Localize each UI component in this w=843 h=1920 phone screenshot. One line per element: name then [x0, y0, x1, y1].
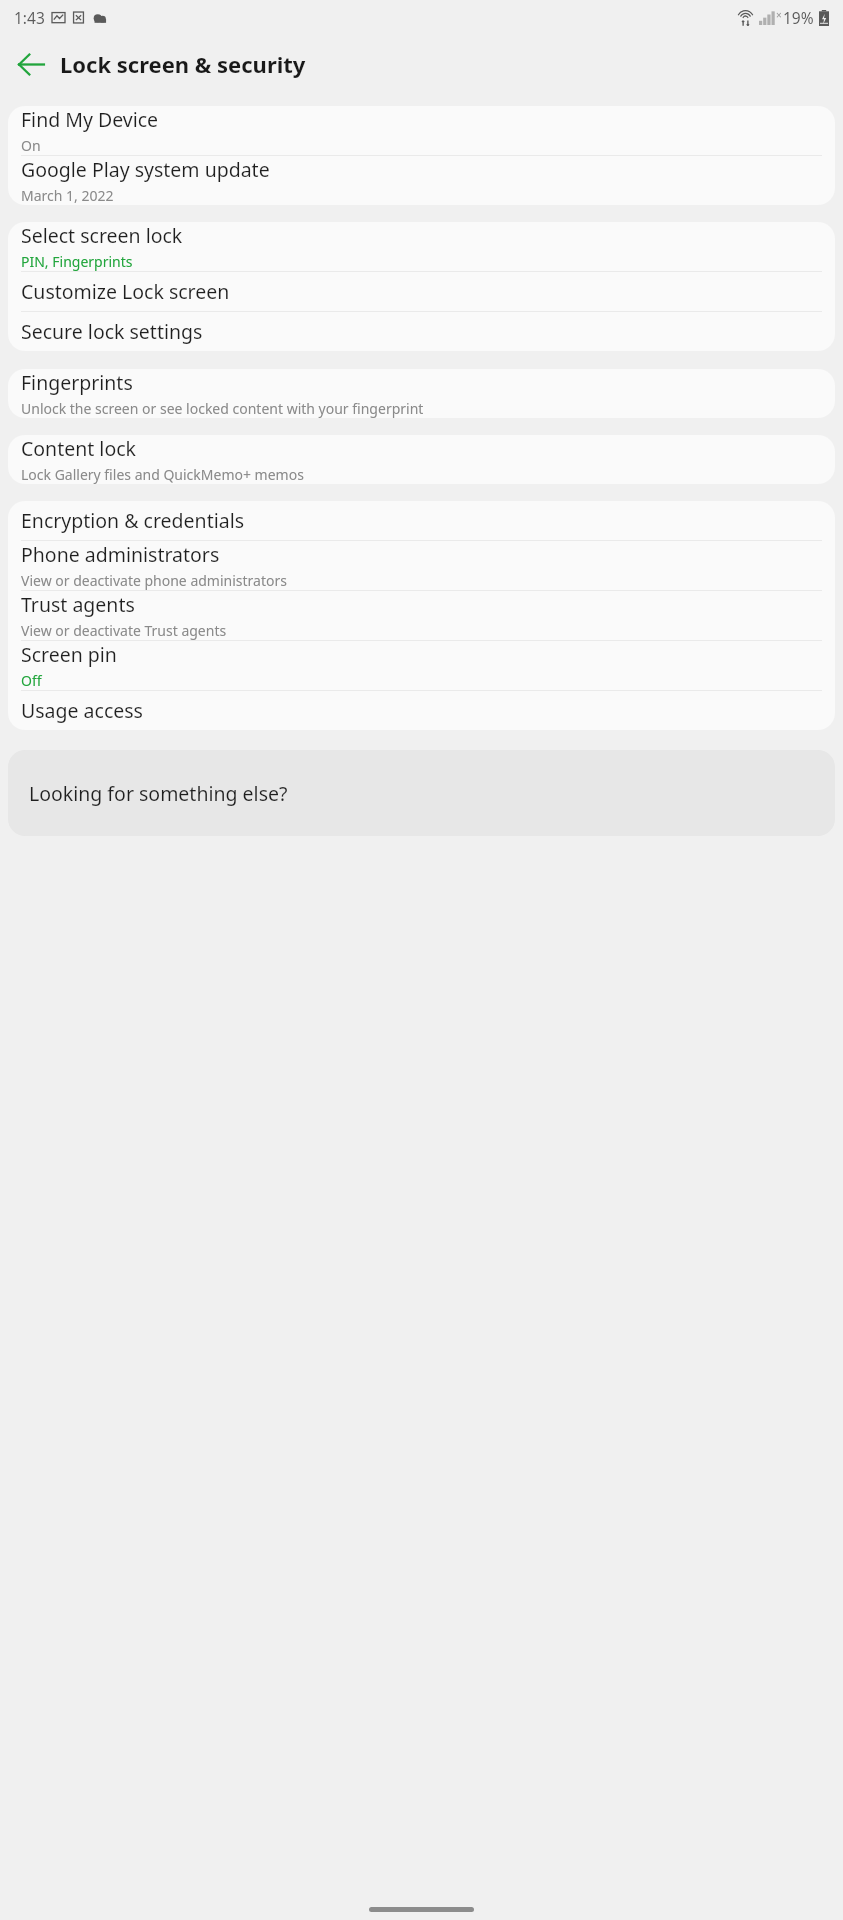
- button[interactable]: Trust agents: [8, 591, 835, 640]
- staticText: Trust agents: [21, 591, 135, 618]
- staticText: Google Play system update: [21, 156, 270, 183]
- staticText: Select screen lock: [21, 222, 183, 249]
- staticText: Lock Gallery files and QuickMemo+ memos: [21, 465, 304, 484]
- button[interactable]: Back: [8, 41, 54, 87]
- staticText: Lock screen & security: [60, 49, 306, 79]
- staticText: Usage access: [21, 697, 143, 724]
- staticText: ×: [776, 8, 782, 22]
- button[interactable]: Customize Lock screen: [8, 272, 835, 311]
- button[interactable]: Looking for something else?: [8, 750, 835, 836]
- button[interactable]: Usage access: [8, 691, 835, 730]
- staticText: PIN, Fingerprints: [21, 252, 133, 271]
- button[interactable]: Find My Device: [8, 106, 835, 155]
- button[interactable]: Phone administrators: [8, 541, 835, 590]
- staticText: Off: [21, 671, 42, 690]
- staticText: 1:43: [14, 7, 45, 28]
- staticText: Encryption & credentials: [21, 507, 245, 534]
- staticText: Phone administrators: [21, 541, 220, 568]
- staticText: On: [21, 136, 41, 155]
- staticText: View or deactivate Trust agents: [21, 621, 227, 640]
- staticText: Content lock: [21, 435, 136, 462]
- staticText: View or deactivate phone administrators: [21, 571, 287, 590]
- button[interactable]: Encryption & credentials: [8, 501, 835, 540]
- staticText: Customize Lock screen: [21, 278, 230, 305]
- staticText: Fingerprints: [21, 369, 133, 396]
- staticText: Screen pin: [21, 641, 117, 668]
- button[interactable]: Secure lock settings: [8, 312, 835, 351]
- button[interactable]: Screen pin: [8, 641, 835, 690]
- staticText: Secure lock settings: [21, 318, 203, 345]
- staticText: Unlock the screen or see locked content …: [21, 399, 424, 418]
- staticText: Looking for something else?: [29, 780, 288, 807]
- button[interactable]: Select screen lock: [8, 222, 835, 271]
- button[interactable]: Google Play system update: [8, 156, 835, 205]
- button[interactable]: Content lock: [8, 435, 835, 484]
- staticText: Find My Device: [21, 106, 159, 133]
- staticText: March 1, 2022: [21, 186, 114, 205]
- staticText: 19%: [783, 7, 814, 28]
- button[interactable]: Fingerprints: [8, 369, 835, 418]
